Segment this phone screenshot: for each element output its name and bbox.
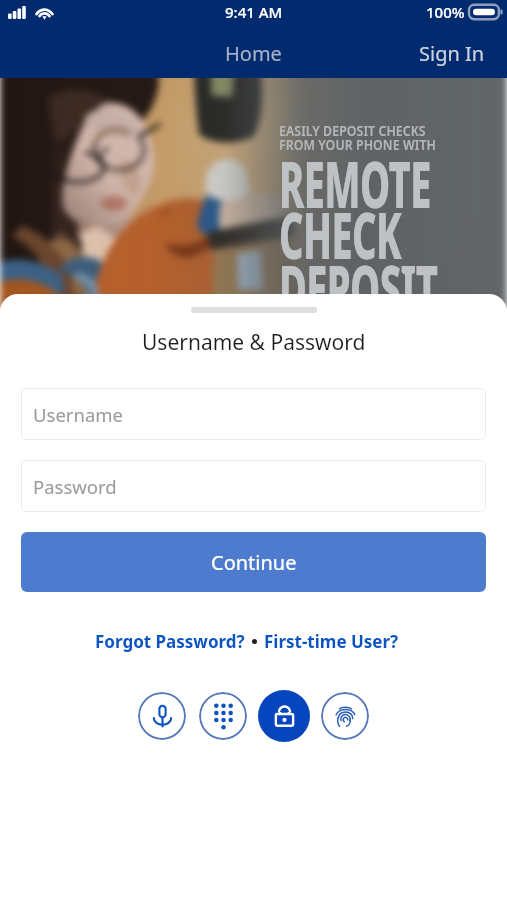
staticText: FROM YOUR PHONE WITH	[279, 135, 436, 154]
staticText: 9:41 AM	[225, 2, 283, 22]
button[interactable]: Password	[21, 460, 486, 512]
staticText: 100%	[426, 2, 465, 22]
staticText: First-time User?	[264, 630, 399, 653]
staticText: DEPOSIT	[279, 244, 438, 331]
staticText: Continue	[211, 549, 297, 576]
button[interactable]: Keypad	[199, 692, 247, 740]
button[interactable]: Fingerprint login	[321, 692, 369, 740]
button[interactable]: Voice login	[138, 692, 186, 740]
staticText: REMOTE	[279, 140, 431, 227]
button[interactable]: Secure login	[258, 690, 310, 742]
staticText: Forgot Password?	[95, 630, 245, 653]
staticText: Password	[33, 474, 117, 499]
button[interactable]: Username	[21, 388, 486, 440]
button[interactable]: Forgot Password?	[95, 626, 245, 657]
staticText: Username & Password	[142, 328, 366, 357]
staticText: Username	[33, 402, 124, 427]
staticText: EASILY DEPOSIT CHECKS	[279, 121, 426, 140]
staticText: Home	[225, 40, 282, 67]
staticText: Sign In	[419, 40, 485, 67]
button[interactable]: First-time User?	[264, 626, 399, 657]
button[interactable]: Continue	[21, 532, 486, 592]
staticText: CHECK	[279, 191, 402, 278]
button[interactable]: Sign In	[405, 32, 507, 75]
button[interactable]: Home	[211, 32, 296, 75]
